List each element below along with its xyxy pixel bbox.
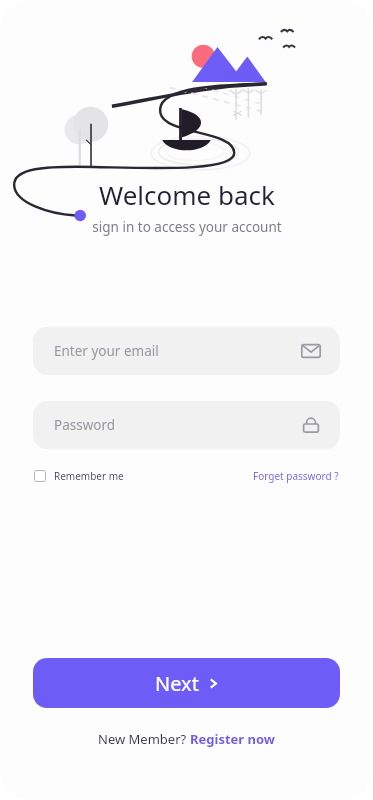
staticText: Welcome back bbox=[99, 177, 275, 212]
button[interactable]: Password bbox=[33, 401, 340, 449]
staticText: Register now bbox=[190, 730, 275, 748]
button[interactable]: Enter your email bbox=[33, 327, 340, 375]
staticText: Remember me bbox=[54, 469, 124, 483]
other: Email bbox=[301, 341, 321, 361]
button[interactable]: Next bbox=[33, 658, 340, 708]
other: Password bbox=[301, 415, 321, 435]
button[interactable]: Remember me bbox=[33, 466, 125, 486]
staticText: Password bbox=[54, 416, 301, 434]
button[interactable]: Forget password ? bbox=[252, 466, 340, 486]
staticText: Forget password ? bbox=[253, 469, 339, 483]
button[interactable]: Register now bbox=[190, 730, 275, 748]
staticText: sign in to access your account bbox=[92, 218, 282, 236]
staticText: Next bbox=[155, 670, 199, 697]
staticText: New Member? bbox=[98, 730, 190, 748]
staticText: Enter your email bbox=[54, 342, 301, 360]
